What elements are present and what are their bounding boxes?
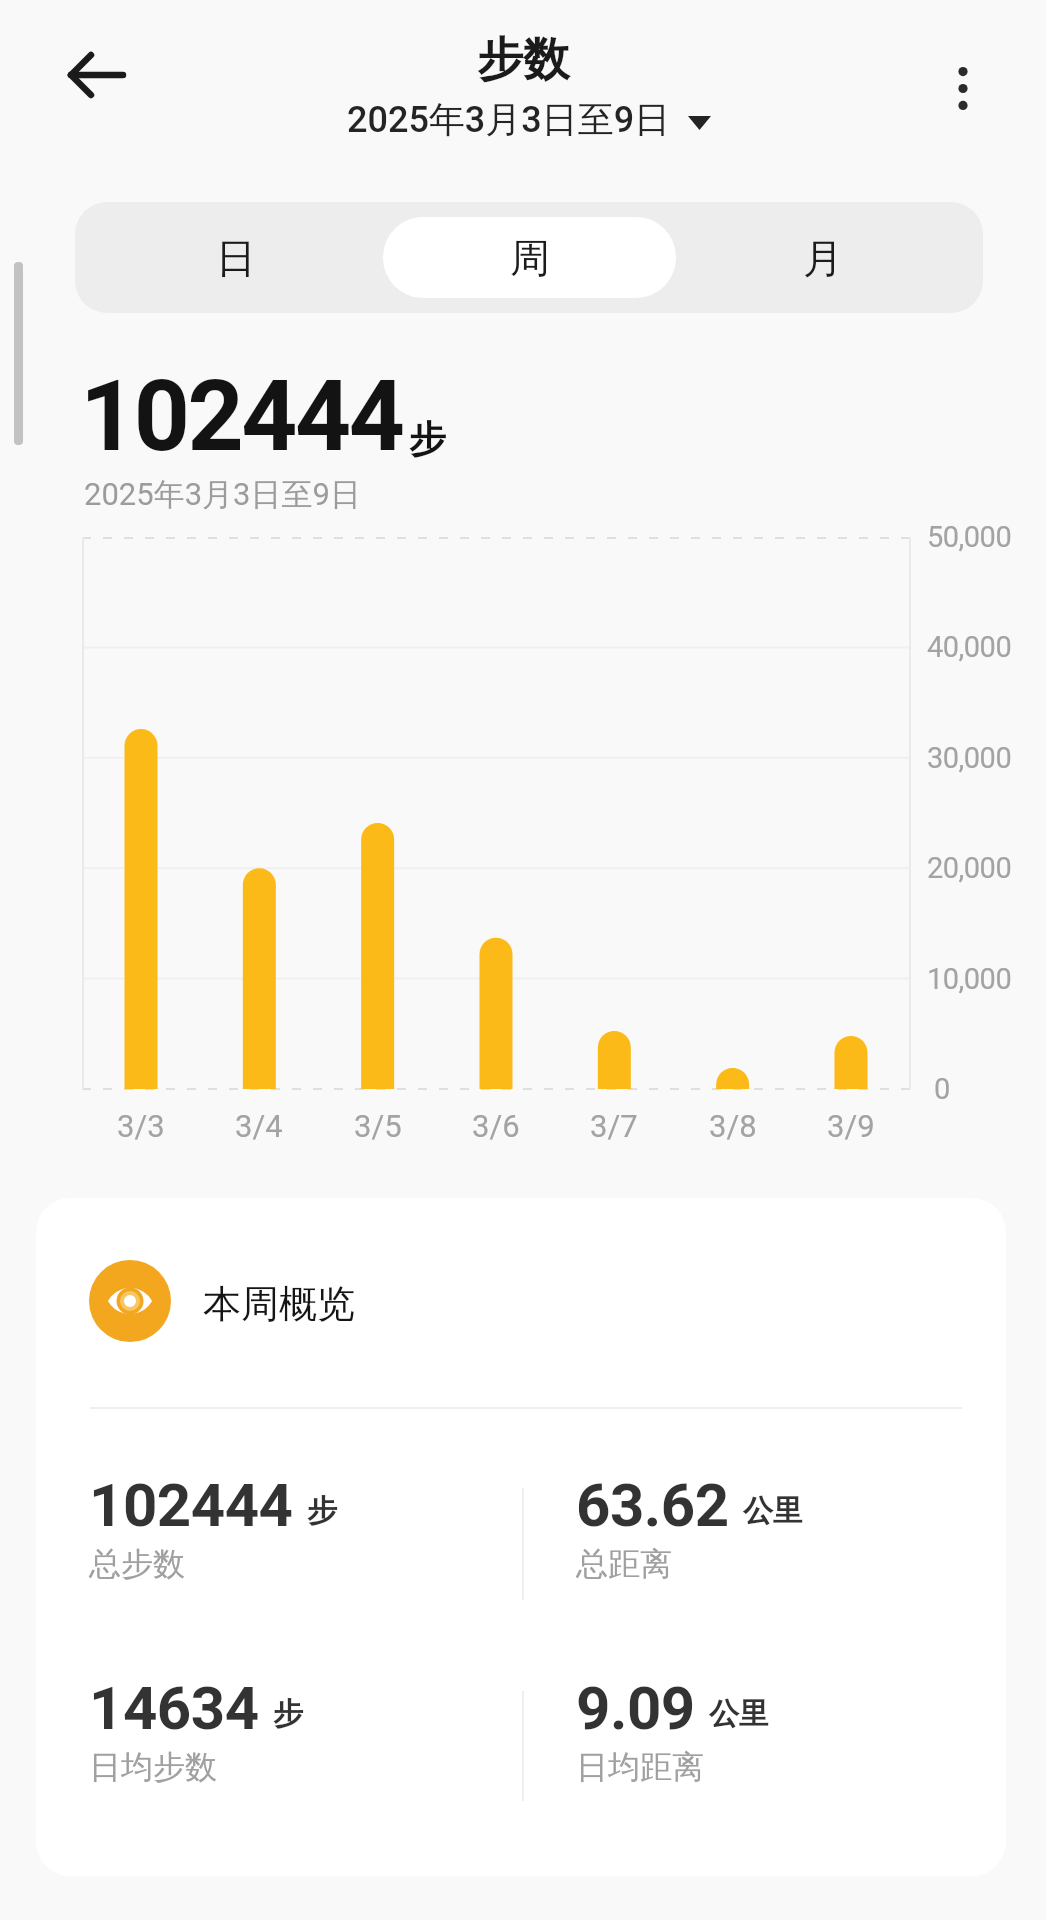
staticText: 10,000 [927,962,1012,996]
staticText: 步数 [477,31,569,89]
staticText: 3/4 [235,1108,283,1144]
staticText: 3/8 [709,1108,757,1144]
staticText: 40,000 [927,630,1012,664]
staticText: 步 [273,1695,303,1733]
staticText: 50,000 [927,520,1012,554]
staticText: 3/5 [354,1108,402,1144]
button[interactable] [55,35,139,115]
staticText: 0 [934,1072,950,1106]
staticText: 102444 [89,1470,293,1540]
staticText: 日均距离 [576,1747,704,1787]
staticText: 3/9 [827,1108,875,1144]
button[interactable]: 日 [89,202,383,313]
staticText: 2025年3月3日至9日 [347,97,671,142]
staticText: 本周概览 [203,1280,355,1328]
staticText: 总距离 [576,1544,672,1584]
staticText: 102444 [80,359,403,474]
staticText: 公里 [709,1695,769,1733]
staticText: 9.09 [576,1673,695,1743]
button[interactable]: 周 [383,217,676,298]
staticText: 3/3 [117,1108,165,1144]
staticText: 20,000 [927,851,1012,885]
staticText: 月 [803,233,843,283]
staticText: 14634 [89,1673,259,1743]
button[interactable]: 2025年3月3日至9日 [347,97,711,142]
staticText: 步 [409,416,446,463]
staticText: 公里 [743,1492,803,1530]
staticText: 周 [510,233,550,283]
button[interactable]: 本周概览 [88,1259,355,1343]
staticText: 30,000 [927,741,1012,775]
staticText: 63.62 [576,1470,729,1540]
staticText: 2025年3月3日至9日 [84,475,361,514]
staticText: 步 [307,1492,337,1530]
button[interactable] [925,45,1001,131]
button[interactable]: 月 [676,202,969,313]
staticText: 日均步数 [89,1747,217,1787]
staticText: 3/6 [472,1108,520,1144]
staticText: 日 [216,233,256,283]
staticText: 3/7 [590,1108,638,1144]
staticText: 总步数 [89,1544,185,1584]
